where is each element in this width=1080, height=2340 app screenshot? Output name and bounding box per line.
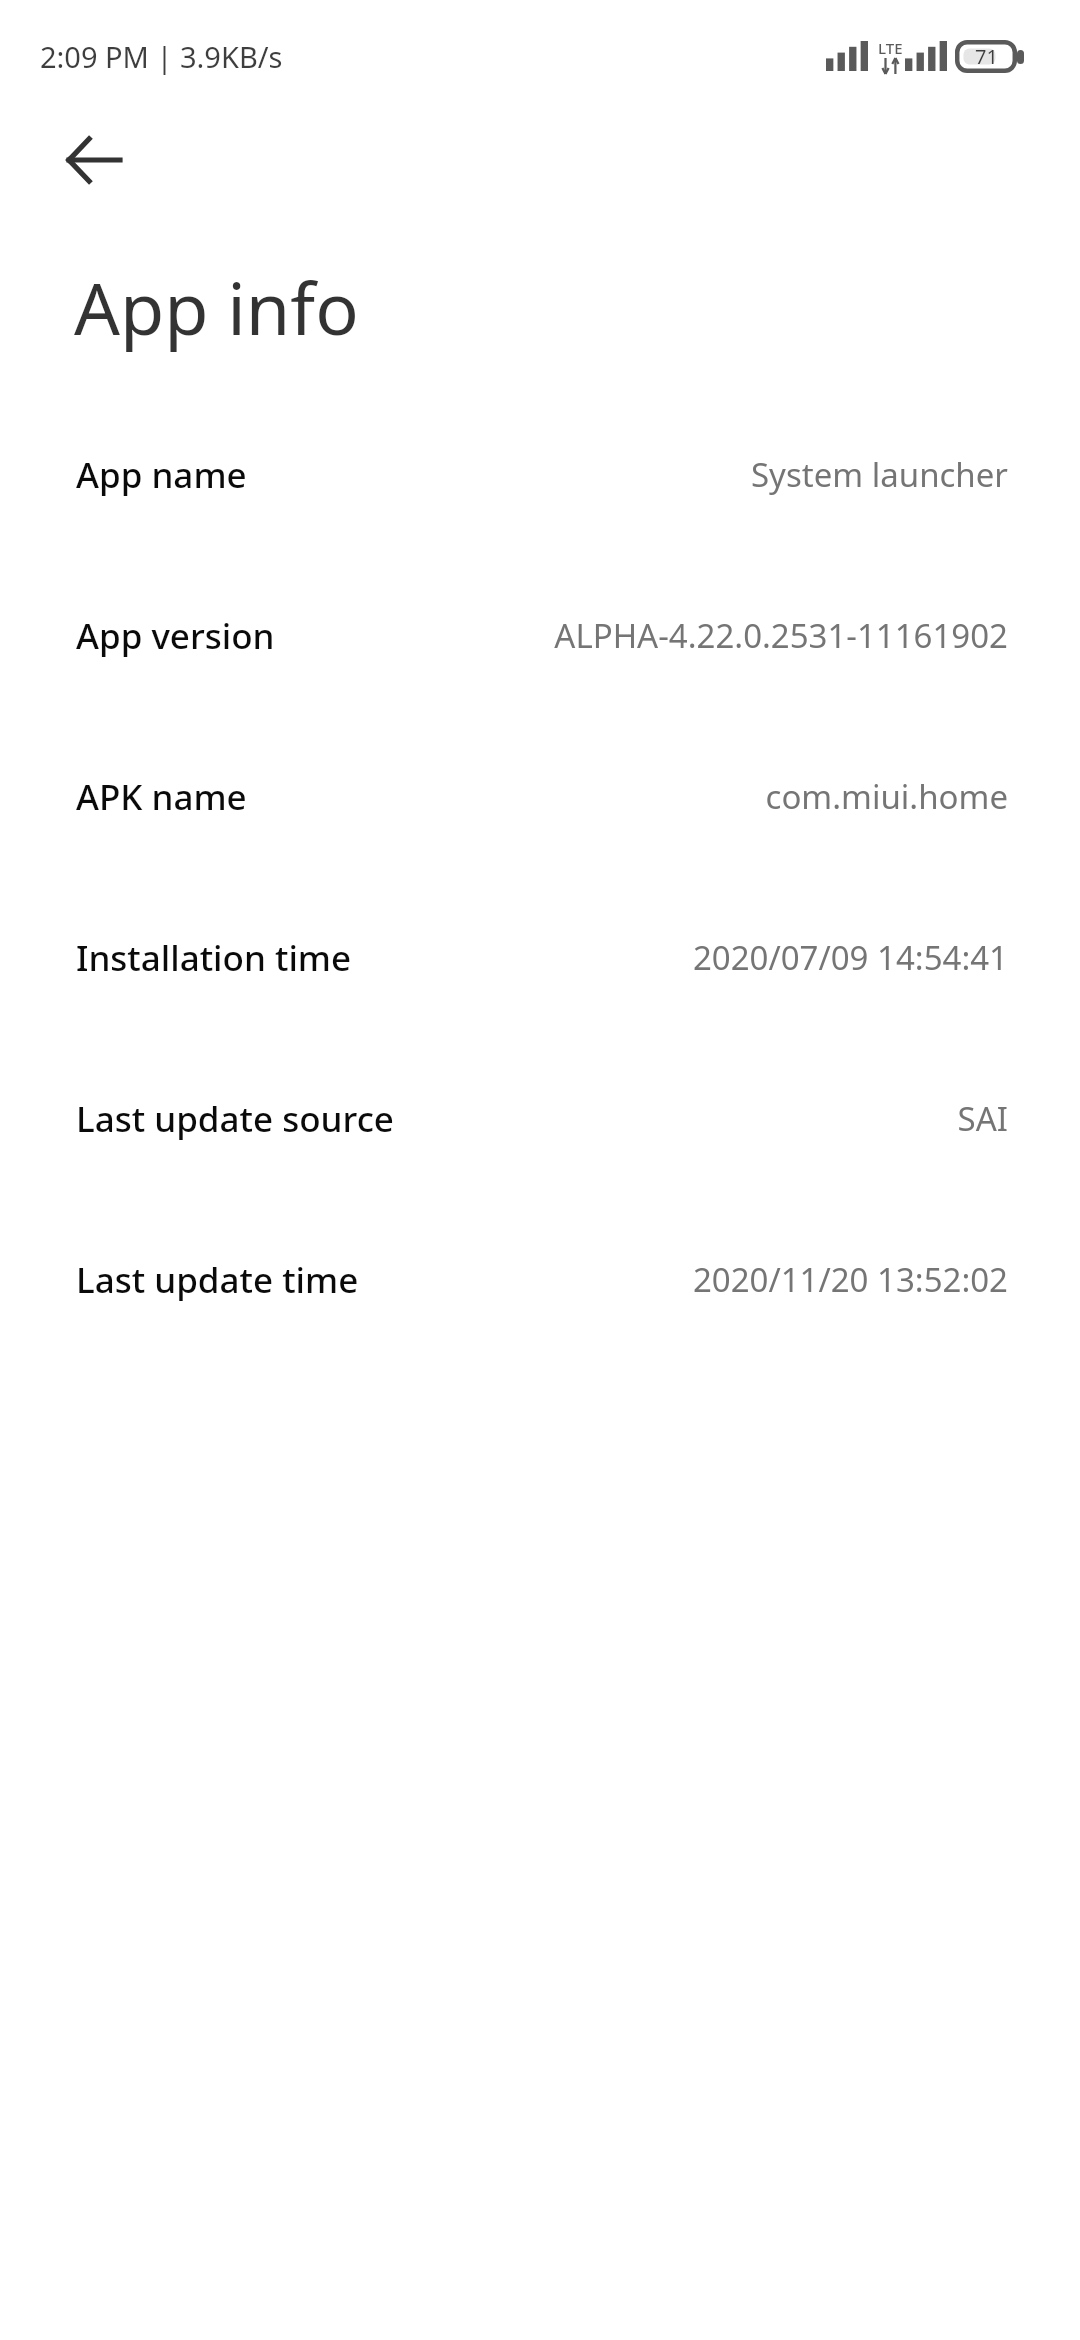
staticText: com.miui.home <box>263 774 1008 819</box>
staticText: Last update source <box>76 1095 394 1143</box>
staticText: APK name <box>76 773 247 821</box>
staticText: System launcher <box>263 452 1008 497</box>
button[interactable]: App version <box>0 555 1080 716</box>
staticText: 2:09 PM | 3.9KB/s <box>40 37 283 76</box>
button[interactable]: App name <box>0 394 1080 555</box>
button[interactable]: Installation time <box>0 877 1080 1038</box>
button[interactable]: Back <box>52 118 136 202</box>
staticText: 2020/07/09 14:54:41 <box>368 935 1008 980</box>
staticText: SAI <box>410 1096 1008 1141</box>
staticText: LTE <box>878 38 903 58</box>
button[interactable]: Last update source <box>0 1038 1080 1199</box>
button[interactable]: Last update time <box>0 1199 1080 1360</box>
staticText: App version <box>76 612 275 660</box>
staticText: Last update time <box>76 1256 359 1304</box>
staticText: Installation time <box>76 934 352 982</box>
staticText: ALPHA-4.22.0.2531-11161902 <box>291 613 1008 658</box>
staticText: App name <box>76 451 247 499</box>
staticText: 2020/11/20 13:52:02 <box>375 1257 1008 1302</box>
staticText: App info <box>74 258 359 356</box>
staticText: 71 <box>975 43 998 70</box>
button[interactable]: APK name <box>0 716 1080 877</box>
